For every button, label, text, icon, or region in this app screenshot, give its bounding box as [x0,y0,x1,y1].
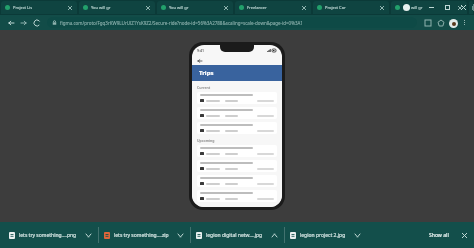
button[interactable]: lets try so [469,1,473,14]
button[interactable]: legion digital netw....jpg [191,225,284,245]
staticText: legion digital netw....jpg [206,232,263,239]
button[interactable]: figma.com/proto/Fgq3rKW9LUrUlZ1YsK9Z2/Se… [47,17,417,28]
button[interactable]: Close tab [66,4,73,11]
button[interactable]: You will gr [79,1,155,14]
button[interactable]: Close tab [378,4,385,11]
staticText: figma.com/proto/Fgq3rKW9LUrUlZ1YsK9Z2/Se… [60,20,303,26]
button[interactable] [197,107,277,119]
button[interactable]: Bookmark [434,16,447,29]
button[interactable]: Profile [400,1,413,14]
button[interactable]: More actions [175,230,185,240]
staticText: legion project 2.jpg [300,232,346,239]
staticText: lets try something....png [19,232,77,239]
button[interactable]: Trips [192,65,282,81]
button[interactable]: Back [196,57,203,64]
button[interactable]: Close [455,0,471,15]
staticText: 9:41 [197,48,204,53]
button[interactable]: lets try something....png [4,225,98,245]
button[interactable]: Install app [421,16,434,29]
button[interactable]: Reload [30,16,43,29]
button[interactable]: More actions [83,230,93,240]
button[interactable] [197,175,277,187]
button[interactable]: Project Car [313,1,389,14]
staticText: lets try something....zip [114,232,169,239]
button[interactable] [197,190,277,202]
button[interactable]: Project Lis [1,1,77,14]
staticText: You will gr [91,5,142,10]
button[interactable]: lets try something....zip [99,225,190,245]
button[interactable]: You will gr [391,1,467,14]
button[interactable]: Forward [17,16,30,29]
staticText: Show all [429,232,449,239]
button[interactable]: Minimize [423,0,439,15]
button[interactable]: Freelancer [235,1,311,14]
button[interactable] [197,92,277,104]
staticText: You will gr [169,5,220,10]
button[interactable] [197,145,277,157]
button[interactable]: legion project 2.jpg [285,225,367,245]
button[interactable]: Close tab [456,4,463,11]
staticText: Project Car [325,5,376,10]
button[interactable] [197,122,277,134]
button[interactable]: More actions [352,230,362,240]
button[interactable]: Back [4,16,17,29]
staticText: Current [197,85,211,90]
button[interactable]: More options [459,17,470,28]
staticText: Freelancer [247,5,298,10]
button[interactable]: More actions [269,230,279,240]
staticText: Upcoming [197,138,215,143]
button[interactable]: Close downloads bar [458,229,470,241]
button[interactable]: Show all [424,230,454,241]
button[interactable]: Close tab [300,4,307,11]
button[interactable]: Maximize [439,0,455,15]
button[interactable] [197,160,277,172]
button[interactable]: Profile [447,17,459,29]
staticText: You will gr [403,5,454,10]
button[interactable]: You will gr [157,1,233,14]
staticText: Project Lis [13,5,64,10]
staticText: Trips [199,69,214,77]
button[interactable]: Close tab [222,4,229,11]
button[interactable]: Close tab [144,4,151,11]
